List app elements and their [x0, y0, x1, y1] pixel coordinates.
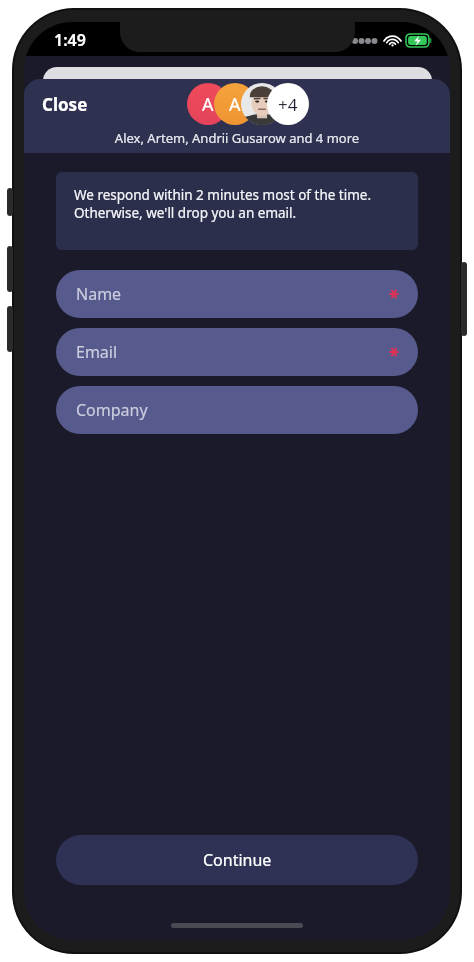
staticText: Email	[76, 341, 118, 363]
staticText: A	[202, 92, 214, 117]
staticText: Alex, Artem, Andrii Gusarow and 4 more	[24, 129, 450, 147]
staticText: +4	[278, 93, 298, 116]
button[interactable]: Email	[56, 328, 418, 376]
staticText: Otherwise, we'll drop you an email.	[74, 204, 297, 222]
button[interactable]: Name	[56, 270, 418, 318]
staticText: Continue	[203, 849, 272, 871]
staticText: Company	[76, 399, 148, 421]
staticText: A	[229, 92, 241, 117]
button[interactable]: Close	[24, 87, 98, 122]
staticText: Name	[76, 283, 122, 305]
staticText: We respond within 2 minutes most of the …	[74, 186, 372, 204]
staticText: 1:49	[54, 29, 86, 51]
button[interactable]: Participants	[187, 83, 309, 125]
button[interactable]: Company	[56, 386, 418, 434]
button[interactable]: Continue	[56, 835, 418, 885]
